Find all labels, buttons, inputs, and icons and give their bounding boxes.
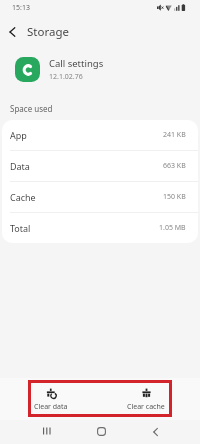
button[interactable]: Clear cache bbox=[116, 385, 176, 414]
staticText: 150 KB bbox=[163, 192, 186, 202]
staticText: Space used bbox=[10, 103, 53, 114]
staticText: Data bbox=[10, 160, 30, 172]
button[interactable]: Data bbox=[2, 151, 198, 181]
staticText: 1.05 MB bbox=[159, 223, 186, 233]
staticText: 663 KB bbox=[163, 161, 186, 171]
staticText: Storage bbox=[27, 24, 69, 40]
staticText: 241 KB bbox=[163, 130, 186, 140]
staticText: 15:13 bbox=[12, 3, 30, 13]
staticText: Clear data bbox=[34, 402, 68, 412]
button[interactable] bbox=[0, 20, 24, 44]
button[interactable] bbox=[90, 420, 112, 442]
button[interactable]: App bbox=[2, 120, 198, 150]
staticText: 12.1.02.76 bbox=[49, 72, 83, 82]
staticText: Total bbox=[10, 222, 31, 234]
button[interactable] bbox=[144, 421, 166, 443]
button[interactable]: Total bbox=[2, 213, 198, 243]
button[interactable]: Cache bbox=[2, 182, 198, 212]
button[interactable] bbox=[36, 420, 58, 442]
button[interactable]: Clear data bbox=[21, 385, 81, 414]
staticText: App bbox=[10, 129, 27, 141]
button[interactable]: Call settings bbox=[15, 57, 104, 82]
staticText: Clear cache bbox=[127, 402, 165, 412]
staticText: Cache bbox=[10, 191, 36, 203]
staticText: Call settings bbox=[49, 57, 104, 70]
